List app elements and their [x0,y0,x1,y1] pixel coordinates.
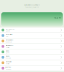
staticText: Morning run [5,28,14,30]
button[interactable]: Sleep [0,55,64,60]
staticText: 45 min [5,63,9,65]
button[interactable]: Breakfast [0,38,64,44]
staticText: Breakfast [5,39,12,41]
staticText: Daily Wellness Summary [24,4,40,6]
staticText: 8,240 [5,52,9,54]
button[interactable]: Steps [0,49,64,55]
staticText: 10 min [5,46,9,48]
staticText: 1.4 L [5,36,8,37]
staticText: Strength [5,61,11,63]
button[interactable]: Mindfulness [0,44,64,49]
staticText: 7 h 12 m [5,57,10,59]
button[interactable]: Hydration [0,33,64,38]
staticText: 82% [54,16,60,19]
staticText: Steps [5,50,9,52]
staticText: Sleep [5,55,9,57]
button[interactable]: Morning run [0,27,64,33]
staticText: 5.2 km [5,30,9,32]
button[interactable]: Journal [0,66,64,71]
staticText: Journal [5,66,10,68]
staticText: Hydration [5,34,12,35]
staticText: Tuesday, 12 March [25,6,39,8]
staticText: 2 entries [5,68,11,70]
button[interactable]: Strength [0,60,64,66]
staticText: Mindfulness [5,44,13,46]
